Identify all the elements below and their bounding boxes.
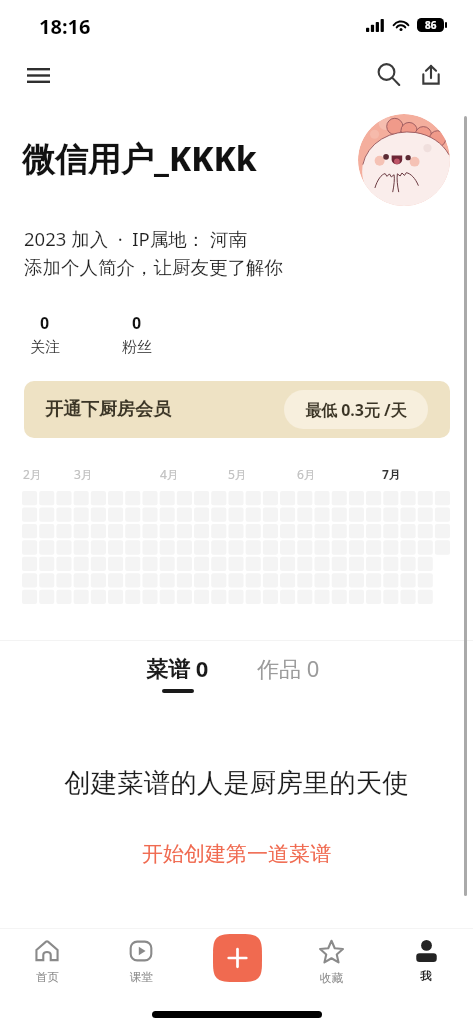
button[interactable]: Menu bbox=[16, 53, 60, 97]
button[interactable]: 菜谱 0 bbox=[138, 653, 217, 693]
staticText: 86 bbox=[425, 18, 437, 32]
staticText: 7月 bbox=[382, 466, 401, 482]
staticText: 0 bbox=[132, 312, 142, 334]
staticText: 2023 加入 · IP属地： 河南 bbox=[24, 226, 248, 251]
button[interactable]: Create bbox=[213, 934, 262, 982]
staticText: 4月 bbox=[160, 466, 179, 482]
staticText: 3月 bbox=[74, 466, 93, 482]
staticText: 课堂 bbox=[130, 970, 153, 984]
button[interactable]: 开通下厨房会员 bbox=[24, 381, 450, 438]
staticText: 首页 bbox=[36, 970, 59, 984]
button[interactable]: 首页 bbox=[23, 939, 71, 984]
button[interactable]: 作品 0 bbox=[249, 653, 328, 683]
staticText: 2月 bbox=[23, 466, 42, 482]
button[interactable]: 课堂 bbox=[117, 939, 165, 984]
staticText: 菜谱 0 bbox=[146, 653, 209, 683]
staticText: 微信用户 bbox=[22, 139, 154, 181]
staticText: 0 bbox=[40, 312, 50, 334]
staticText: 粉丝 bbox=[122, 338, 152, 357]
staticText: 5月 bbox=[228, 466, 247, 482]
staticText: 收藏 bbox=[320, 971, 343, 985]
staticText: 添加个人简介，让厨友更了解你 bbox=[24, 256, 283, 279]
staticText: 开通下厨房会员 bbox=[45, 398, 171, 421]
button[interactable]: 0 bbox=[23, 312, 67, 357]
button[interactable]: Avatar bbox=[358, 114, 450, 206]
staticText: _KKKk bbox=[154, 136, 257, 181]
button[interactable]: 0 bbox=[115, 312, 159, 357]
staticText: 我 bbox=[420, 969, 432, 983]
staticText: 创建菜谱的人是厨房里的天使 bbox=[0, 766, 473, 799]
button[interactable]: 开始创建第一道菜谱 bbox=[0, 841, 473, 867]
staticText: 关注 bbox=[30, 338, 60, 357]
button[interactable]: 收藏 bbox=[307, 939, 355, 985]
staticText: 6月 bbox=[297, 466, 316, 482]
button[interactable]: Search bbox=[366, 52, 410, 96]
button[interactable]: 我 bbox=[402, 939, 450, 983]
staticText: 开始创建第一道菜谱 bbox=[142, 841, 331, 867]
staticText: 18:16 bbox=[39, 13, 91, 40]
staticText: 最低 0.3元 /天 bbox=[305, 399, 407, 421]
button[interactable]: Share bbox=[409, 53, 453, 97]
staticText: 作品 0 bbox=[257, 653, 320, 683]
